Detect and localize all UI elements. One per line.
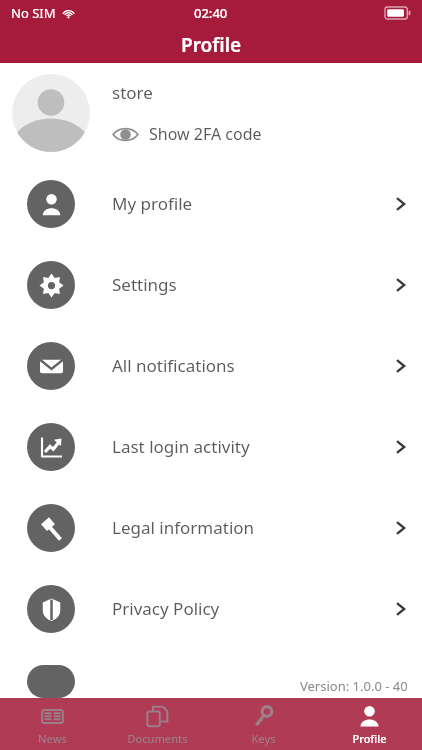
staticText: Last login activity <box>112 435 395 458</box>
staticText: Privacy Policy <box>112 597 395 620</box>
staticText: 02:40 <box>194 4 228 22</box>
button[interactable]: Keys <box>210 698 316 750</box>
other: Show 2FA code <box>112 126 139 143</box>
button[interactable]: Documents <box>105 698 210 750</box>
staticText: Keys <box>251 731 276 746</box>
button[interactable]: Profile <box>316 698 422 750</box>
staticText: Settings <box>112 273 395 296</box>
staticText: Legal information <box>112 516 395 539</box>
staticText: Profile <box>181 32 242 58</box>
button[interactable]: Legal information <box>0 487 422 568</box>
staticText: All notifications <box>112 354 395 377</box>
staticText: Profile <box>352 731 387 746</box>
button[interactable]: All notifications <box>0 325 422 406</box>
staticText: Version: 1.0.0 - 40 <box>300 677 408 695</box>
staticText: My profile <box>112 192 395 215</box>
staticText: News <box>38 731 67 746</box>
button[interactable]: Settings <box>0 244 422 325</box>
button[interactable]: My profile <box>0 163 422 244</box>
staticText: Show 2FA code <box>149 123 262 145</box>
staticText: Documents <box>127 731 188 746</box>
button[interactable]: Privacy Policy <box>0 568 422 649</box>
button[interactable]: News <box>0 698 105 750</box>
staticText: No SIM <box>11 4 56 22</box>
button[interactable]: Last login activity <box>0 406 422 487</box>
button[interactable]: Show 2FA code <box>112 123 262 145</box>
staticText: store <box>112 81 153 104</box>
